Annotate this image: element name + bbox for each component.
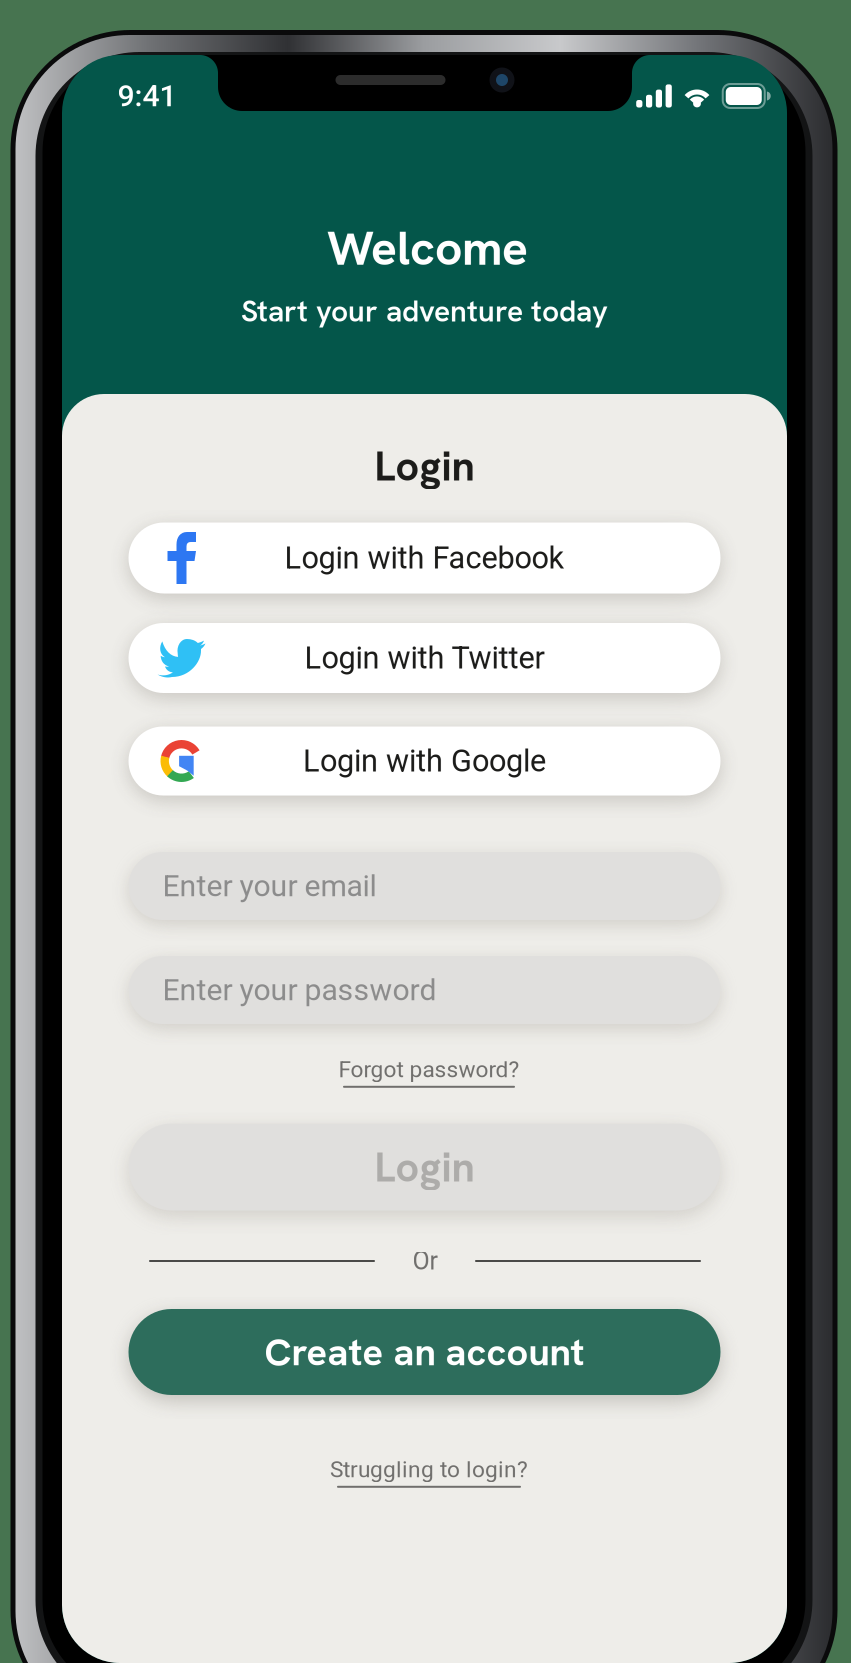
staticText: Struggling to login? — [330, 1456, 528, 1483]
staticText: Login with Google — [303, 743, 546, 779]
button[interactable]: Login with Twitter — [128, 623, 720, 693]
staticText: Forgot password? — [338, 1056, 519, 1083]
button[interactable]: Login with Facebook — [128, 522, 720, 593]
staticText: Enter your email — [162, 868, 376, 904]
staticText: 9:41 — [117, 78, 176, 114]
staticText: Login with Twitter — [304, 640, 544, 676]
staticText: Login — [374, 439, 474, 493]
staticText: Start your adventure today — [241, 291, 608, 331]
button[interactable]: Login — [128, 1123, 720, 1210]
staticText: Enter your password — [162, 972, 436, 1008]
button[interactable]: Create an account — [128, 1309, 720, 1395]
button[interactable]: Struggling to login? — [229, 1457, 629, 1487]
staticText: Or — [412, 1246, 437, 1276]
staticText: Login with Facebook — [284, 540, 564, 576]
staticText: Create an account — [264, 1327, 584, 1377]
staticText: Welcome — [327, 217, 528, 279]
staticText: Login — [374, 1140, 474, 1194]
button[interactable]: Forgot password? — [229, 1057, 629, 1087]
button[interactable]: Login with Google — [128, 726, 720, 795]
